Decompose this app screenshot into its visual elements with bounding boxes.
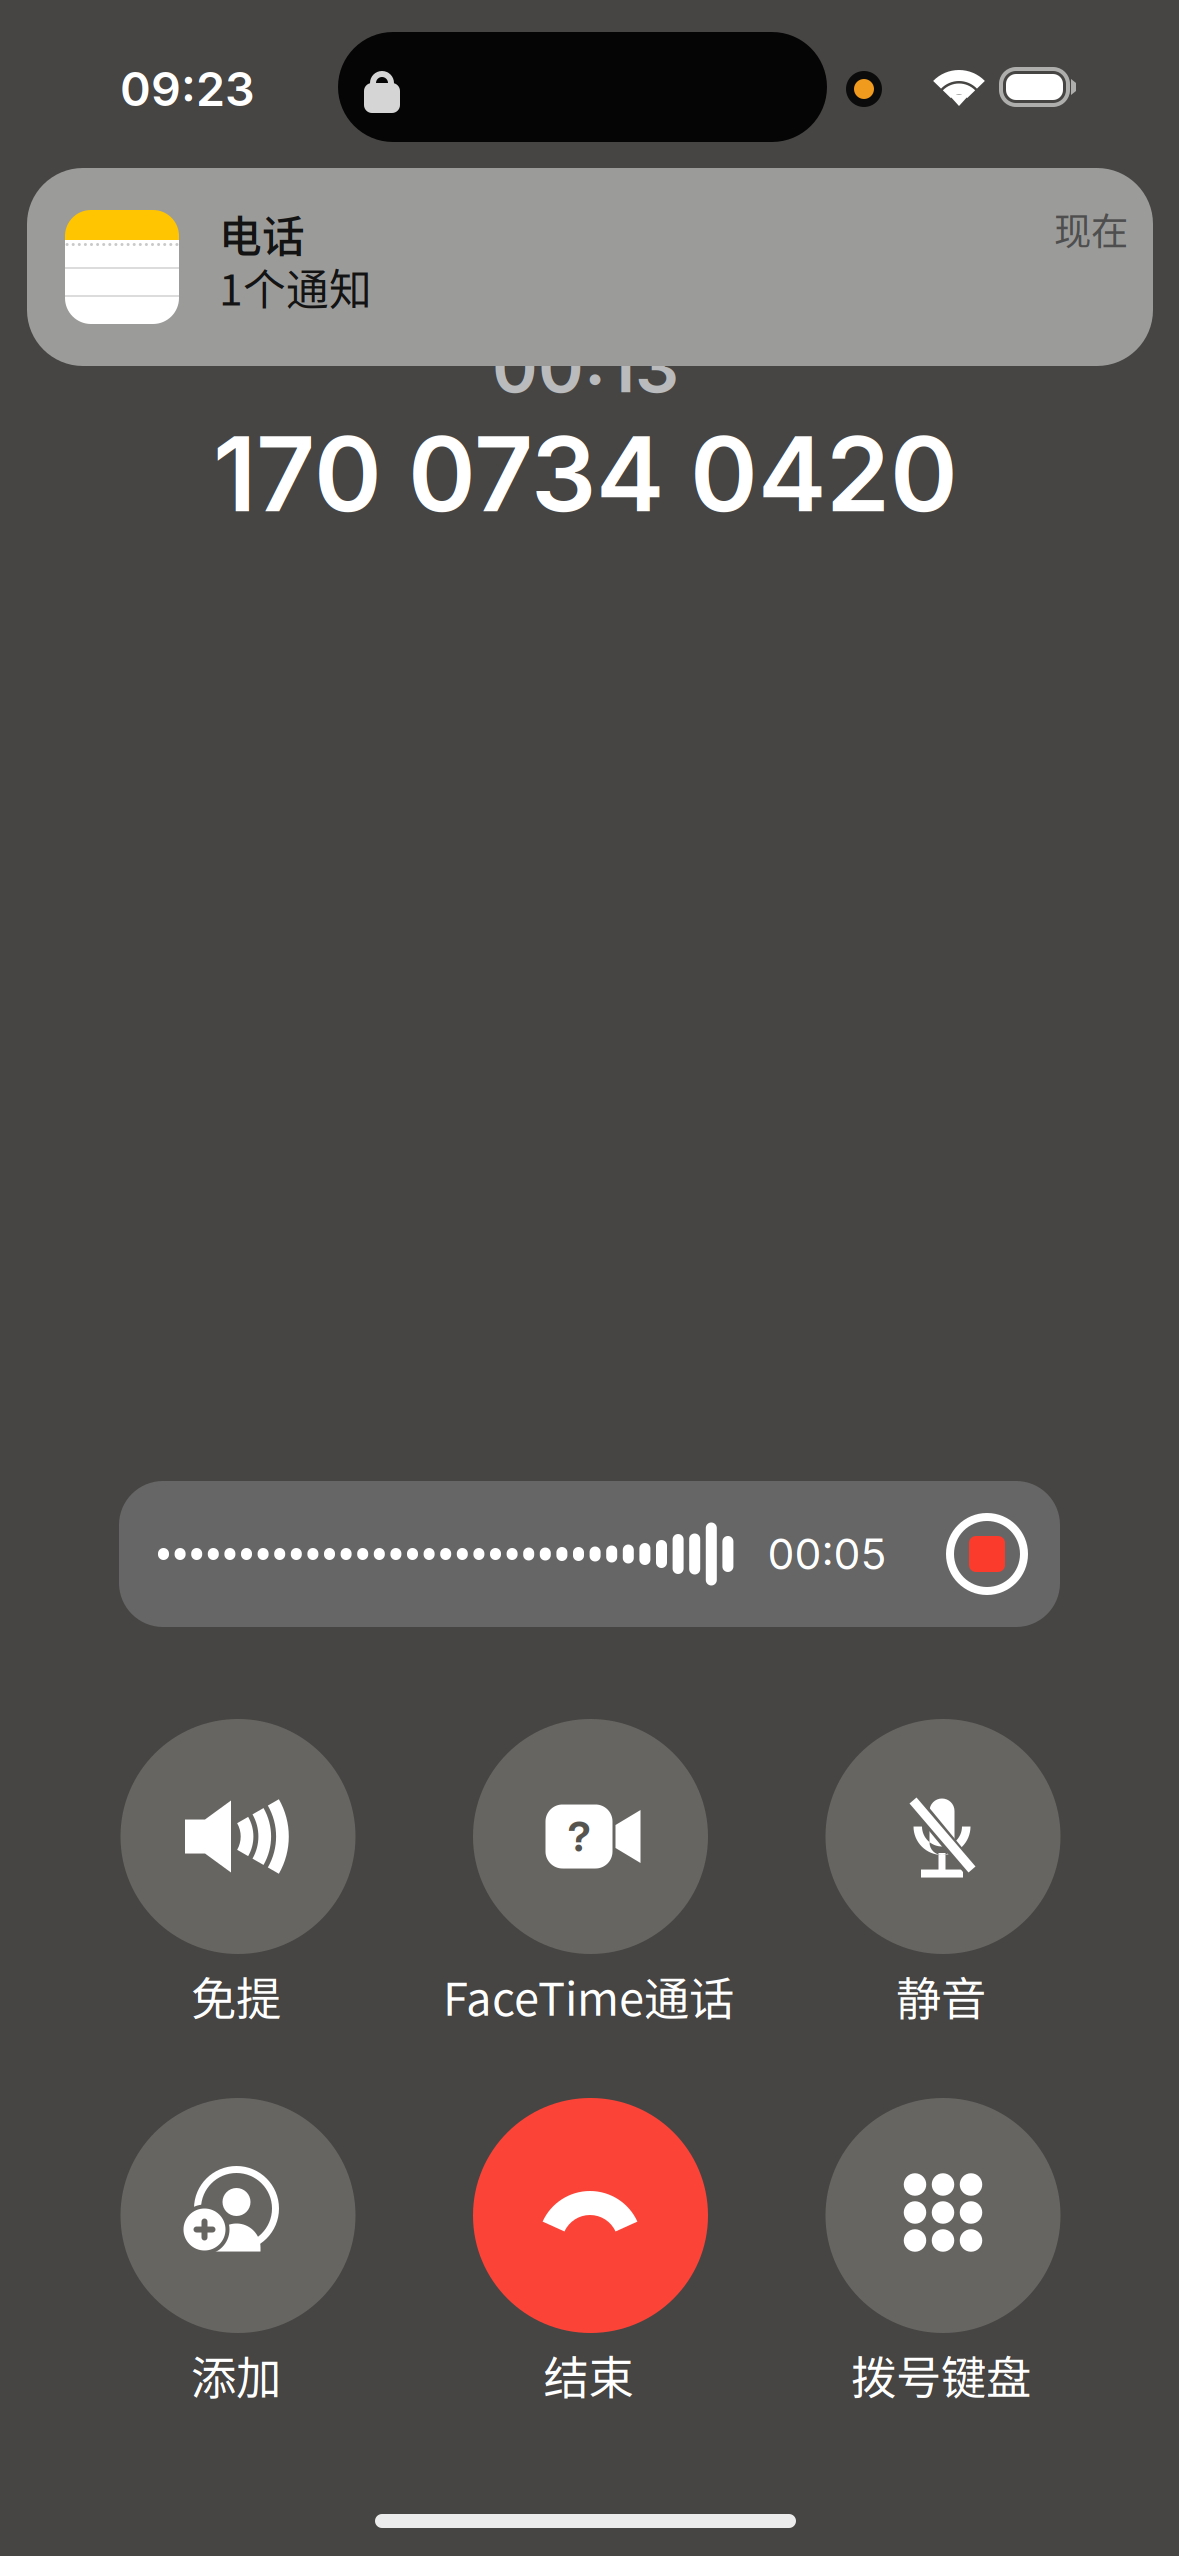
- staticText: FaceTime通话: [443, 1963, 734, 2029]
- button[interactable]: 添加: [62, 2098, 414, 2418]
- button[interactable]: ?: [414, 1719, 767, 2039]
- button[interactable]: 电话: [27, 168, 1153, 366]
- staticText: 添加: [191, 2342, 281, 2408]
- staticText: 拨号键盘: [851, 2342, 1031, 2408]
- staticText: 静音: [896, 1963, 986, 2029]
- staticText: ?: [567, 1811, 590, 1861]
- button[interactable]: 静音: [767, 1719, 1119, 2039]
- button[interactable]: 结束: [414, 2098, 767, 2418]
- staticText: 170 0734 0420: [213, 412, 958, 536]
- button[interactable]: Stop recording: [946, 1513, 1028, 1595]
- staticText: 1个通知: [219, 256, 372, 318]
- staticText: 免提: [191, 1963, 281, 2029]
- staticText: 结束: [543, 2342, 633, 2408]
- staticText: 电话: [219, 203, 305, 265]
- button[interactable]: 拨号键盘: [767, 2098, 1119, 2418]
- staticText: 00:05: [767, 1528, 886, 1580]
- staticText: 00:13: [492, 325, 679, 409]
- staticText: 09:23: [120, 61, 255, 117]
- staticText: 现在: [1054, 202, 1128, 256]
- button[interactable]: 免提: [62, 1719, 414, 2039]
